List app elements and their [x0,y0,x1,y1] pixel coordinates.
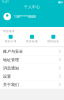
staticText: 138****8888 [13,14,35,19]
staticText: 我的钱包 [47,40,59,43]
staticText: 消息通知 [3,66,19,70]
button[interactable]: 账户与安全 [0,47,64,55]
staticText: 9:41 [2,0,9,4]
staticText: ▮▮ ◗ [58,0,62,3]
staticText: 我的收藏 [26,40,38,43]
staticText: 设置 [3,74,11,79]
staticText: 关于我们 [3,82,19,87]
button[interactable]: 关于我们 [0,81,64,89]
button[interactable]: 我的收藏 [21,35,43,43]
staticText: 账户与安全 [3,49,23,54]
staticText: 我的订单 [5,40,17,43]
button[interactable]: 消息通知 [0,64,64,72]
staticText: 个人中心 [24,4,40,9]
staticText: 地址管理 [3,57,19,62]
button[interactable]: 设置 [0,72,64,80]
button[interactable]: 地址管理 [0,56,64,64]
staticText: 我的服务 [3,29,15,33]
button[interactable]: 我的钱包 [43,35,64,43]
button[interactable]: 我的订单 [0,35,21,43]
